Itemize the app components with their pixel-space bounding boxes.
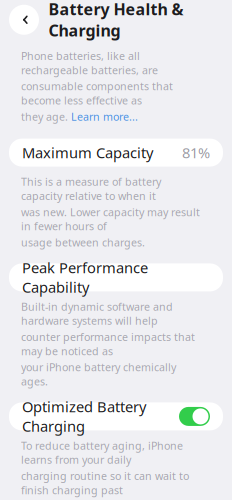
staticText: counter performance impacts that may be … bbox=[21, 330, 195, 358]
staticText: was new. Lower capacity may result in fe… bbox=[21, 205, 200, 233]
staticText: Learn more... bbox=[71, 109, 138, 124]
staticText: they age. bbox=[21, 109, 71, 124]
staticText: usage between charges. bbox=[21, 235, 145, 249]
staticText: Maximum Capacity bbox=[22, 143, 153, 162]
button[interactable]: Learn more... bbox=[71, 109, 138, 124]
staticText: Battery Health & Charging bbox=[48, 0, 183, 41]
staticText: This is a measure of battery capacity re… bbox=[21, 175, 161, 203]
staticText: Built-in dynamic software and hardware s… bbox=[21, 299, 173, 328]
staticText: your iPhone battery chemically ages. bbox=[21, 360, 176, 388]
button[interactable]: Optimized Battery Charging bbox=[9, 402, 223, 430]
staticText: Optimized Battery Charging bbox=[22, 397, 146, 436]
staticText: To reduce battery aging, iPhone learns f… bbox=[21, 438, 183, 467]
staticText: 81% bbox=[182, 143, 210, 162]
button[interactable]: Back bbox=[9, 5, 39, 35]
button[interactable]: Peak Performance Capability bbox=[9, 263, 223, 291]
staticText: consumable components that become less e… bbox=[21, 79, 173, 107]
button[interactable]: Maximum Capacity bbox=[9, 139, 223, 167]
staticText: Phone batteries, like all rechargeable b… bbox=[21, 49, 158, 77]
staticText: charging routine so it can wait to finis… bbox=[21, 469, 189, 497]
staticText: Peak Performance Capability bbox=[22, 258, 148, 297]
